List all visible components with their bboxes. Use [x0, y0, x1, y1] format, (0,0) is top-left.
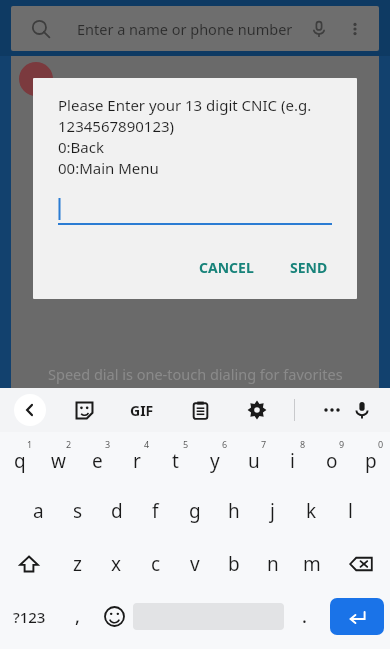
button[interactable]: o: [312, 432, 351, 484]
staticText: a: [33, 498, 44, 524]
button[interactable]: i: [273, 432, 312, 484]
button[interactable]: Back: [14, 394, 46, 426]
button[interactable]: Voice input: [347, 395, 377, 425]
staticText: SEND: [290, 258, 328, 277]
staticText: r: [133, 448, 141, 474]
button[interactable]: c: [136, 537, 175, 590]
staticText: z: [73, 551, 82, 577]
staticText: o: [326, 448, 338, 474]
staticText: 6: [222, 438, 228, 450]
staticText: 0:Back: [58, 137, 104, 157]
button[interactable]: h: [214, 484, 253, 537]
staticText: 0: [378, 438, 384, 450]
staticText: ?123: [13, 607, 46, 627]
button[interactable]: j: [253, 484, 292, 537]
button[interactable]: w: [39, 432, 78, 484]
staticText: 8: [300, 438, 306, 450]
staticText: CANCEL: [199, 258, 254, 277]
button[interactable]: SEND: [282, 250, 336, 285]
staticText: t: [172, 448, 179, 474]
staticText: 1234567890123): [58, 116, 175, 136]
button[interactable]: [58, 196, 332, 228]
button[interactable]: Clipboard: [185, 395, 215, 425]
staticText: y: [210, 448, 220, 474]
staticText: n: [267, 551, 279, 577]
other: More options: [345, 19, 365, 39]
button[interactable]: g: [175, 484, 214, 537]
staticText: h: [228, 498, 240, 524]
button[interactable]: s: [58, 484, 97, 537]
staticText: m: [303, 551, 321, 577]
staticText: 9: [339, 438, 345, 450]
other: Search: [31, 19, 51, 39]
button[interactable]: q: [0, 432, 39, 484]
staticText: 5: [183, 438, 189, 450]
button[interactable]: z: [58, 537, 97, 590]
button[interactable]: Stickers: [69, 395, 99, 425]
button[interactable]: More: [317, 395, 347, 425]
button[interactable]: x: [97, 537, 136, 590]
button[interactable]: Backspace: [331, 537, 390, 590]
staticText: d: [111, 498, 123, 524]
staticText: 2: [66, 438, 72, 450]
button[interactable]: f: [136, 484, 175, 537]
staticText: Speed dial is one-touch dialing for favo…: [48, 364, 343, 384]
staticText: Enter a name or phone number: [77, 19, 293, 39]
staticText: GIF: [130, 401, 154, 420]
button[interactable]: k: [292, 484, 331, 537]
button[interactable]: Shift: [0, 537, 58, 590]
button[interactable]: l: [331, 484, 370, 537]
staticText: b: [228, 551, 240, 577]
staticText: .: [302, 604, 307, 629]
button[interactable]: n: [253, 537, 292, 590]
button[interactable]: Search: [11, 6, 379, 51]
button[interactable]: y: [195, 432, 234, 484]
staticText: w: [51, 448, 66, 474]
staticText: i: [290, 448, 295, 474]
staticText: f: [152, 498, 159, 524]
button[interactable]: b: [214, 537, 253, 590]
staticText: l: [348, 498, 353, 524]
button[interactable]: p: [351, 432, 390, 484]
button[interactable]: a: [19, 484, 58, 537]
staticText: 1: [27, 438, 33, 450]
button[interactable]: .: [284, 590, 324, 643]
staticText: v: [190, 551, 200, 577]
staticText: ,: [75, 604, 80, 629]
staticText: 00:Main Menu: [58, 158, 159, 178]
button[interactable]: CANCEL: [191, 250, 262, 285]
button[interactable]: t: [156, 432, 195, 484]
staticText: e: [92, 448, 103, 474]
button[interactable]: Enter: [330, 598, 384, 635]
button[interactable]: ?123: [0, 590, 59, 643]
button[interactable]: Emoji: [96, 590, 133, 643]
staticText: q: [14, 448, 26, 474]
other: Voice search: [309, 19, 329, 39]
staticText: 3: [105, 438, 111, 450]
button[interactable]: e: [78, 432, 117, 484]
button[interactable]: d: [97, 484, 136, 537]
button[interactable]: r: [117, 432, 156, 484]
staticText: 4: [144, 438, 150, 450]
button[interactable]: Settings: [242, 395, 272, 425]
staticText: j: [270, 498, 275, 524]
button[interactable]: m: [292, 537, 331, 590]
staticText: u: [248, 448, 260, 474]
staticText: 7: [261, 438, 267, 450]
staticText: Please Enter your 13 digit CNIC (e.g.: [58, 95, 312, 115]
staticText: x: [111, 551, 122, 577]
staticText: k: [306, 498, 317, 524]
staticText: c: [151, 551, 161, 577]
staticText: s: [73, 498, 83, 524]
button[interactable]: GIF: [126, 397, 158, 424]
staticText: p: [365, 448, 377, 474]
button[interactable]: u: [234, 432, 273, 484]
button[interactable]: v: [175, 537, 214, 590]
button[interactable]: ,: [59, 590, 96, 643]
staticText: g: [189, 498, 201, 524]
